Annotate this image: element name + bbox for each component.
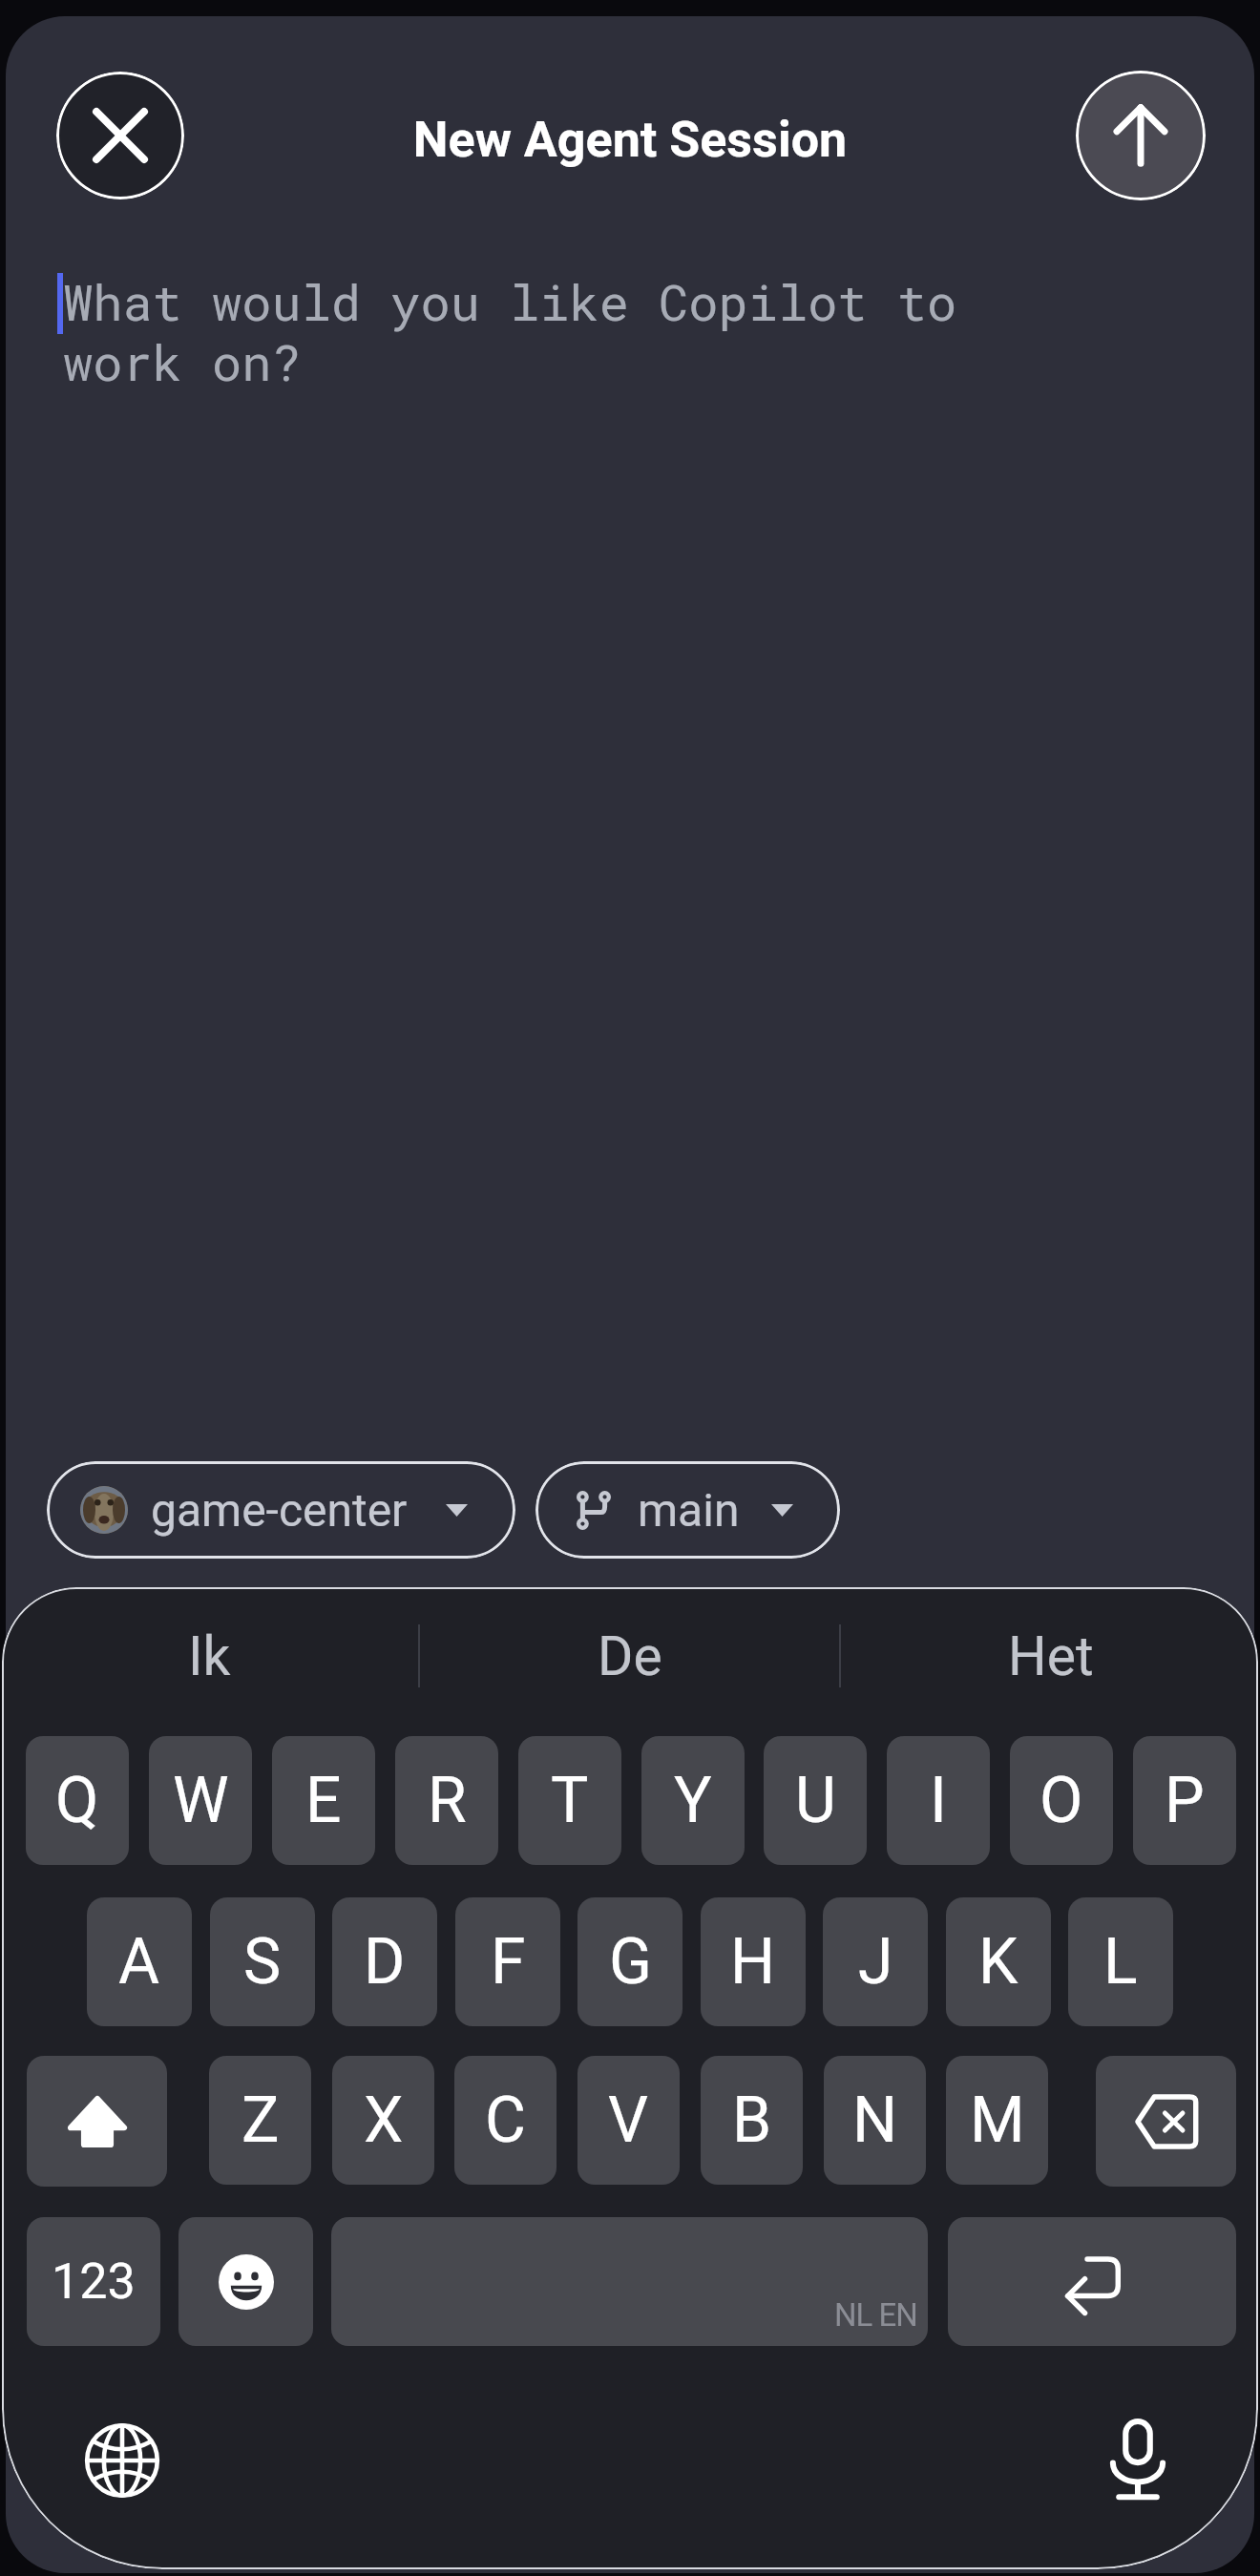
staticText: X <box>364 2084 404 2157</box>
button[interactable]: game-center <box>47 1461 515 1559</box>
button[interactable]: Change language <box>75 2414 169 2507</box>
button[interactable]: O <box>1010 1736 1113 1865</box>
staticText: B <box>732 2084 772 2157</box>
staticText: E <box>305 1764 342 1837</box>
button[interactable]: E <box>272 1736 375 1865</box>
staticText: F <box>491 1925 526 1999</box>
staticText: Y <box>674 1764 712 1837</box>
button[interactable]: H <box>701 1897 806 2026</box>
button[interactable]: L <box>1068 1897 1173 2026</box>
button[interactable]: K <box>946 1897 1051 2026</box>
staticText: I <box>930 1764 947 1837</box>
button[interactable]: I <box>887 1736 990 1865</box>
button[interactable]: Emoji <box>178 2217 313 2346</box>
button[interactable]: main <box>535 1461 840 1559</box>
button[interactable]: J <box>823 1897 928 2026</box>
button[interactable]: P <box>1133 1736 1236 1865</box>
staticText: V <box>608 2084 649 2157</box>
button[interactable]: Close <box>56 72 184 199</box>
staticText: N <box>852 2084 898 2157</box>
staticText: M <box>970 2084 1025 2157</box>
staticText: T <box>551 1764 589 1837</box>
staticText: J <box>858 1925 893 1999</box>
staticText: U <box>795 1764 836 1837</box>
button[interactable]: Q <box>26 1736 129 1865</box>
staticText: C <box>485 2084 526 2157</box>
staticText: Z <box>241 2084 280 2157</box>
button[interactable]: Y <box>641 1736 745 1865</box>
button[interactable]: Z <box>209 2056 311 2185</box>
staticText: L <box>1103 1925 1138 1999</box>
staticText: S <box>243 1925 282 1999</box>
staticText: W <box>173 1764 229 1837</box>
button[interactable]: Send <box>1076 71 1206 200</box>
button[interactable]: C <box>454 2056 556 2185</box>
button[interactable]: G <box>577 1897 682 2026</box>
staticText: main <box>638 1483 740 1537</box>
button[interactable]: A <box>87 1897 192 2026</box>
staticText: P <box>1165 1764 1205 1837</box>
staticText: NL EN <box>834 2296 917 2334</box>
button[interactable]: Voice input <box>1091 2414 1185 2507</box>
staticText: De <box>598 1624 662 1688</box>
staticText: K <box>978 1925 1018 1999</box>
button[interactable]: N <box>824 2056 926 2185</box>
button[interactable]: Enter <box>948 2217 1236 2346</box>
button[interactable]: V <box>577 2056 680 2185</box>
staticText: R <box>428 1764 467 1837</box>
staticText: game-center <box>151 1483 408 1537</box>
staticText: G <box>609 1925 652 1999</box>
staticText: Het <box>1008 1624 1094 1688</box>
button[interactable]: F <box>455 1897 560 2026</box>
button[interactable]: Het <box>841 1594 1260 1718</box>
staticText: Q <box>55 1764 99 1837</box>
button[interactable]: T <box>518 1736 621 1865</box>
staticText: New Agent Session <box>0 111 1260 169</box>
button[interactable]: M <box>946 2056 1048 2185</box>
button[interactable]: Ik <box>0 1594 418 1718</box>
button[interactable]: De <box>420 1594 839 1718</box>
button[interactable]: Shift <box>27 2056 167 2187</box>
staticText: 123 <box>52 2252 136 2311</box>
staticText: H <box>730 1925 776 1999</box>
button[interactable]: W <box>149 1736 252 1865</box>
staticText: O <box>1039 1764 1083 1837</box>
button[interactable]: D <box>332 1897 437 2026</box>
button[interactable]: 123 <box>27 2217 160 2346</box>
staticText: What would you like Copilot to work on? <box>63 269 1008 394</box>
button[interactable]: X <box>332 2056 434 2185</box>
staticText: D <box>364 1925 406 1999</box>
button[interactable]: R <box>395 1736 498 1865</box>
button[interactable]: U <box>764 1736 867 1865</box>
staticText: A <box>118 1925 160 1999</box>
button[interactable]: S <box>210 1897 315 2026</box>
button[interactable]: B <box>701 2056 803 2185</box>
button[interactable]: Space <box>331 2217 928 2346</box>
button[interactable]: Backspace <box>1096 2056 1236 2187</box>
staticText: Ik <box>188 1624 231 1688</box>
